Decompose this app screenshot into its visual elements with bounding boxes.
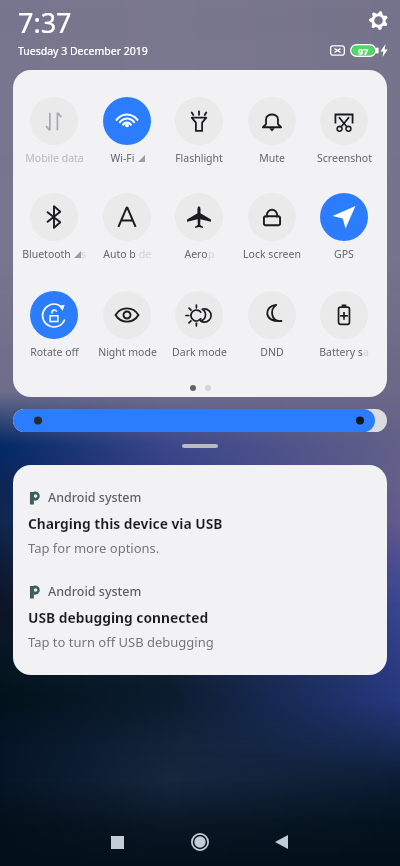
button[interactable]: Mute xyxy=(236,97,308,165)
button[interactable]: Android system xyxy=(13,559,387,653)
staticText: a xyxy=(363,345,369,359)
staticText: Android system xyxy=(48,583,142,600)
staticText: Bluetooth xyxy=(22,247,71,261)
staticText: Tuesday 3 December 2019 xyxy=(18,44,148,58)
button[interactable]: Rotate off xyxy=(18,291,90,359)
staticText: Tap to turn off USB debugging xyxy=(28,633,214,651)
staticText: DND xyxy=(260,345,284,359)
button[interactable]: Settings xyxy=(365,7,391,33)
button[interactable]: Wi-Fi xyxy=(91,97,163,165)
staticText: p xyxy=(208,247,215,261)
staticText: Android system xyxy=(48,489,142,506)
button[interactable]: Recents xyxy=(93,818,141,866)
staticText: Flashlight xyxy=(175,151,223,165)
button[interactable]: Aero xyxy=(163,193,235,261)
staticText: 7:37 xyxy=(18,4,72,41)
button[interactable]: Auto b xyxy=(91,193,163,261)
staticText: Aero xyxy=(184,247,208,261)
staticText: Mobile data xyxy=(25,151,84,165)
button[interactable]: DND xyxy=(236,291,308,359)
staticText: Battery s xyxy=(319,345,363,359)
button[interactable]: Mobile data xyxy=(18,97,90,165)
staticText: Tap for more options. xyxy=(28,539,160,557)
staticText: Night mode xyxy=(98,345,157,359)
button[interactable]: Battery s xyxy=(308,291,380,359)
button[interactable]: Brightness xyxy=(13,409,387,432)
button[interactable]: Screenshot xyxy=(308,97,380,165)
button[interactable]: GPS xyxy=(308,193,380,261)
button[interactable]: Night mode xyxy=(91,291,163,359)
staticText: de xyxy=(136,247,152,261)
staticText: Charging this device via USB xyxy=(28,514,223,533)
staticText: Screenshot xyxy=(317,151,372,165)
button[interactable]: Lock screen xyxy=(236,193,308,261)
staticText: GPS xyxy=(334,247,354,261)
button[interactable]: Back xyxy=(257,818,305,866)
button[interactable]: Flashlight xyxy=(163,97,235,165)
staticText: USB debugging connected xyxy=(28,608,209,627)
button[interactable]: Android system xyxy=(13,465,387,559)
staticText: Lock screen xyxy=(243,247,301,261)
staticText: Dark mode xyxy=(172,345,227,359)
button[interactable]: Home xyxy=(176,818,224,866)
staticText: Rotate off xyxy=(30,345,79,359)
staticText: Auto b xyxy=(103,247,136,261)
staticText: 97 xyxy=(358,45,369,57)
button[interactable]: Dark mode xyxy=(163,291,235,359)
staticText: s xyxy=(81,247,87,261)
button[interactable]: Bluetooth xyxy=(18,193,90,261)
staticText: Mute xyxy=(259,151,285,165)
staticText: Wi-Fi xyxy=(110,151,135,165)
